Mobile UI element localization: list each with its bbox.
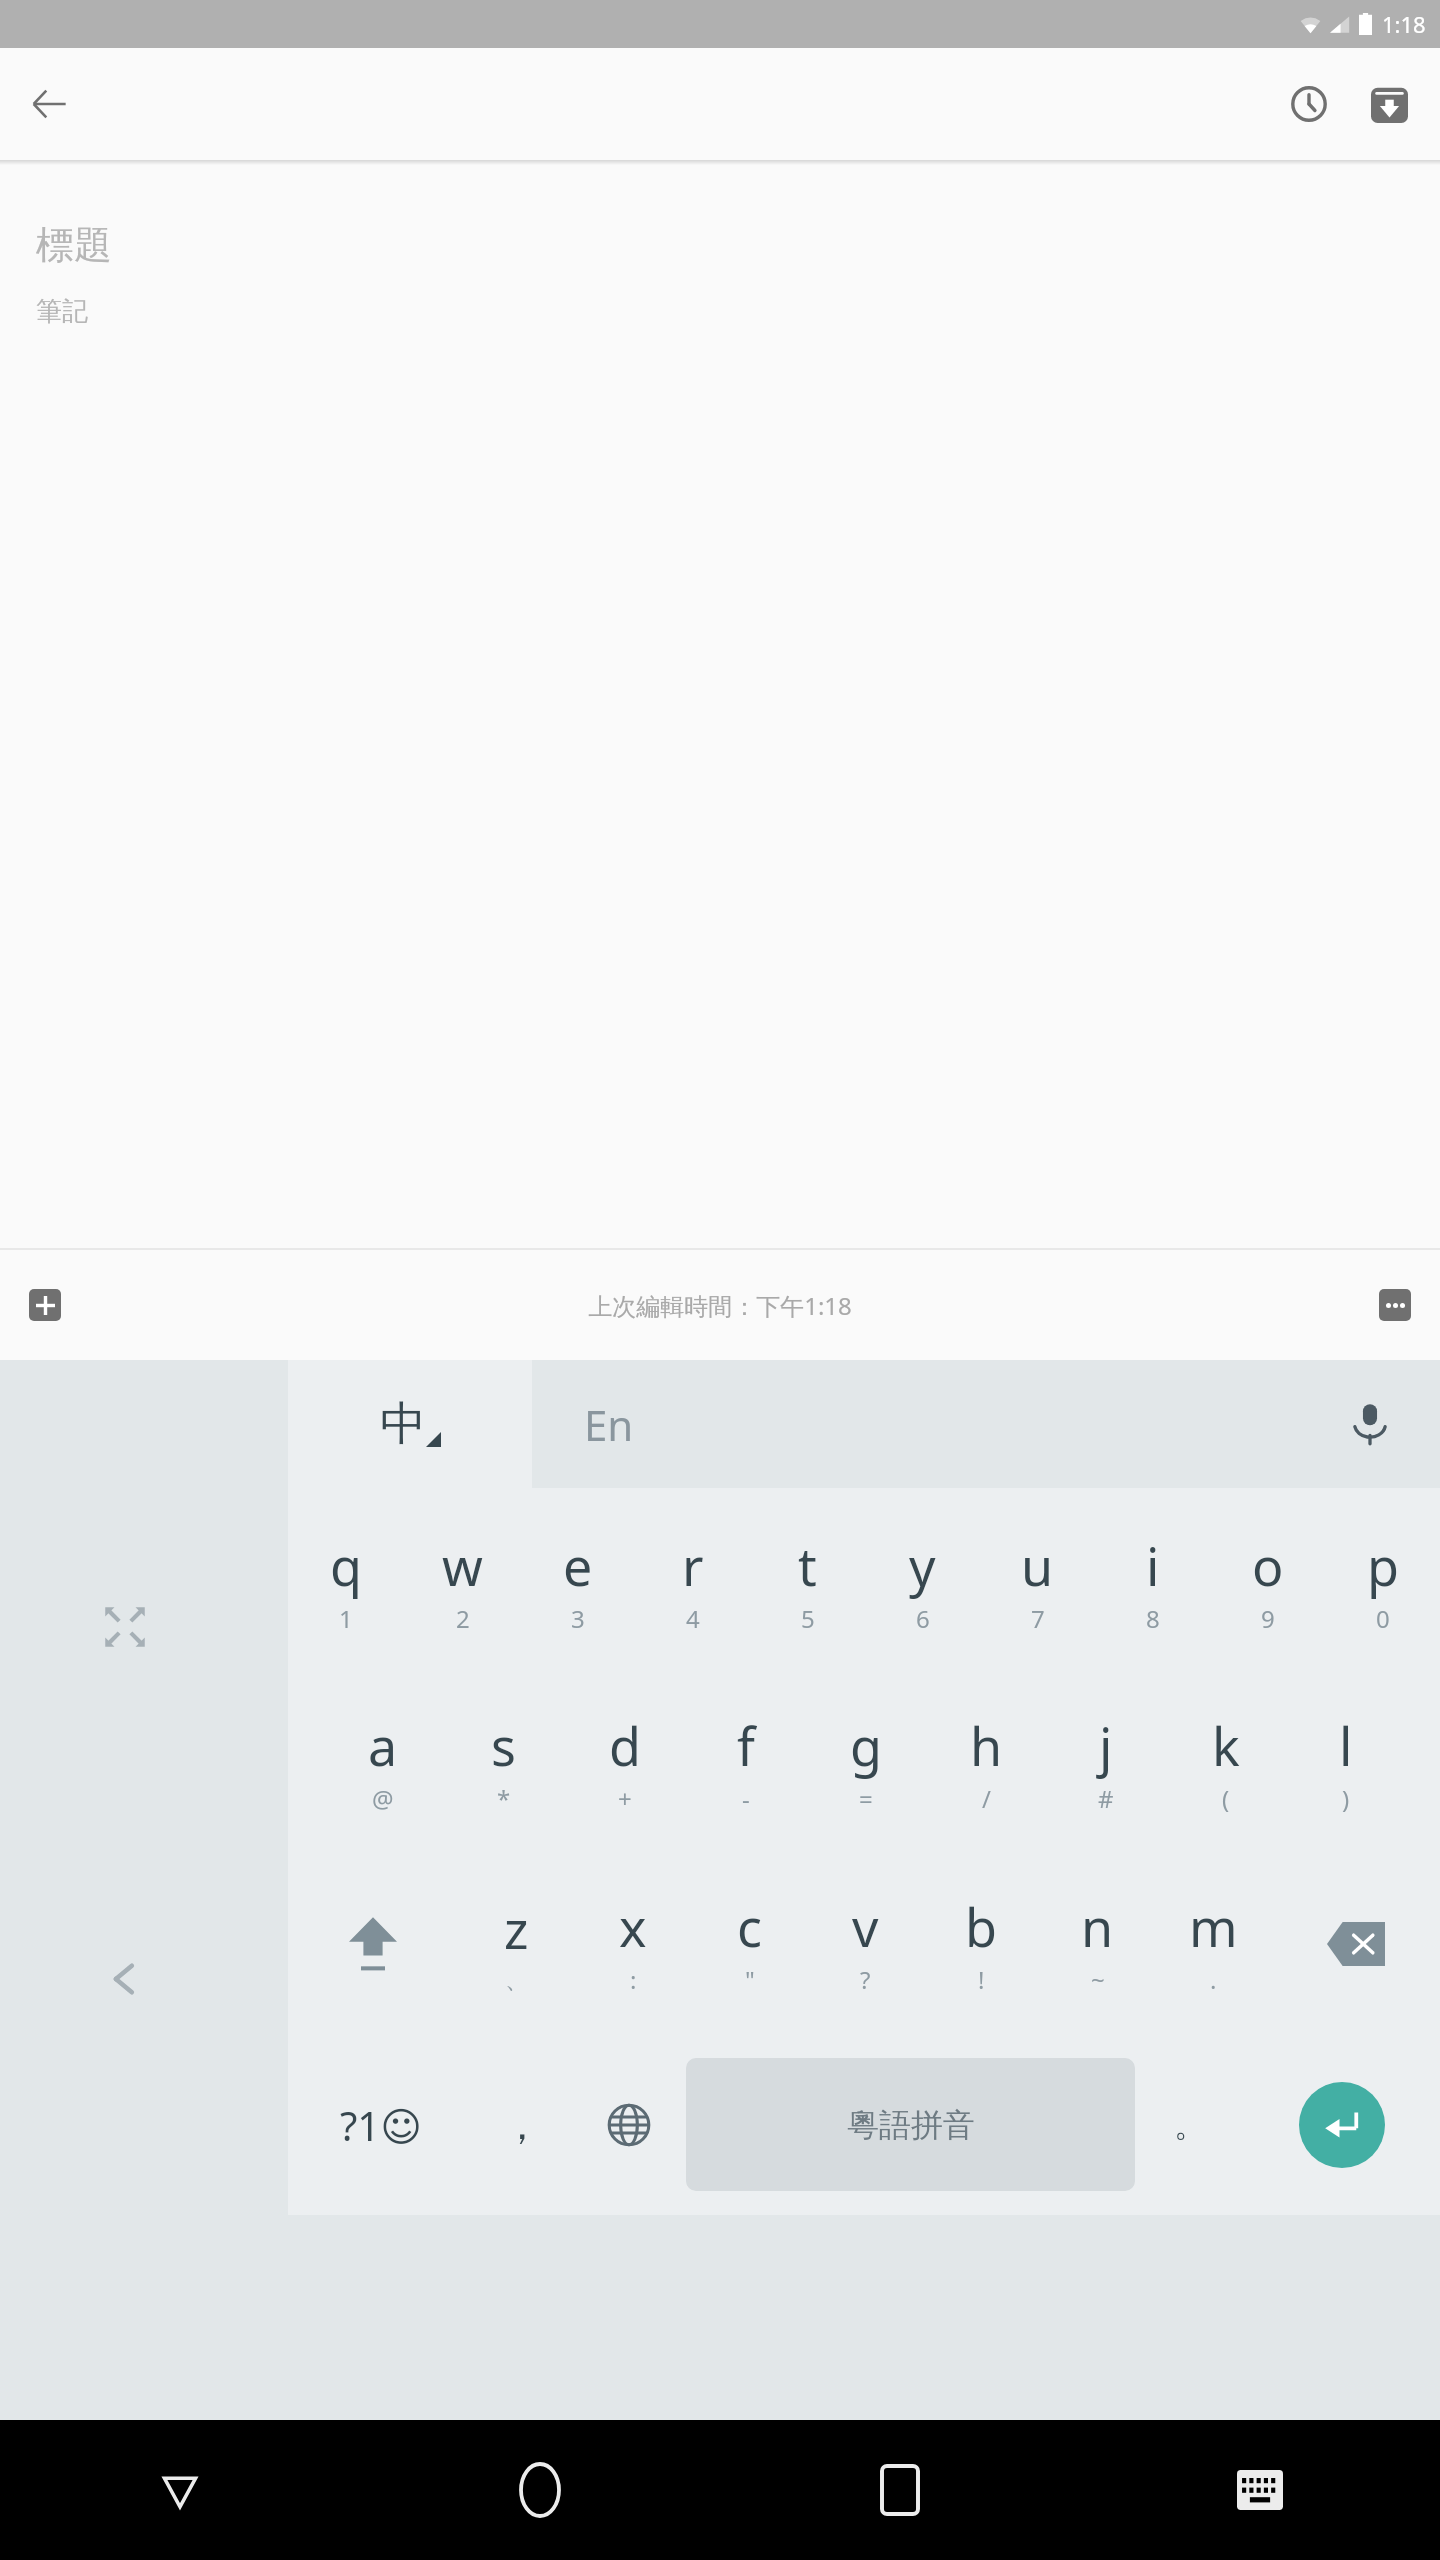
button[interactable]: Backspace bbox=[1271, 1853, 1440, 2034]
button[interactable]: 中 bbox=[288, 1360, 532, 1488]
staticText: 、 bbox=[505, 1965, 529, 1995]
staticText: 8 bbox=[1146, 1602, 1160, 1635]
staticText: h bbox=[970, 1710, 1003, 1781]
button[interactable]: Back bbox=[12, 67, 86, 141]
staticText: 標題 bbox=[36, 221, 112, 269]
staticText: " bbox=[745, 1963, 755, 1996]
button[interactable]: Reminder bbox=[1272, 67, 1346, 141]
button[interactable]: i bbox=[1095, 1492, 1210, 1672]
button[interactable]: Switch keyboard bbox=[1080, 2420, 1440, 2560]
staticText: f bbox=[737, 1710, 755, 1781]
staticText: x bbox=[619, 1891, 647, 1962]
button[interactable]: n bbox=[1039, 1853, 1155, 2034]
button[interactable]: a bbox=[322, 1672, 443, 1853]
staticText: y bbox=[909, 1530, 936, 1601]
button[interactable]: Voice input bbox=[1330, 1384, 1410, 1464]
staticText: 上次編輯時間：下午1:18 bbox=[588, 1289, 852, 1322]
button[interactable]: Add bbox=[16, 1276, 74, 1334]
staticText: = bbox=[859, 1782, 873, 1815]
staticText: 中 bbox=[380, 1395, 426, 1453]
button[interactable]: f bbox=[685, 1672, 806, 1853]
button[interactable]: ， bbox=[473, 2034, 571, 2215]
button[interactable]: o bbox=[1210, 1492, 1325, 1672]
staticText: w bbox=[442, 1530, 483, 1601]
staticText: 1 bbox=[339, 1602, 353, 1635]
staticText: v bbox=[852, 1891, 879, 1962]
button[interactable]: r bbox=[635, 1492, 750, 1672]
staticText: d bbox=[609, 1710, 641, 1781]
button[interactable]: Enter bbox=[1299, 2082, 1385, 2168]
button[interactable]: e bbox=[520, 1492, 635, 1672]
staticText: b bbox=[965, 1891, 997, 1962]
button[interactable]: v bbox=[807, 1853, 923, 2034]
button[interactable]: En bbox=[532, 1360, 1440, 1488]
staticText: - bbox=[742, 1782, 750, 1815]
button[interactable]: Archive bbox=[1352, 67, 1426, 141]
button[interactable]: y bbox=[865, 1492, 980, 1672]
button[interactable]: Collapse keyboard bbox=[90, 1944, 160, 2014]
button[interactable]: p bbox=[1325, 1492, 1440, 1672]
staticText: 2 bbox=[456, 1602, 470, 1635]
staticText: + bbox=[618, 1782, 632, 1815]
button[interactable]: 。 bbox=[1135, 2034, 1244, 2215]
staticText: ， bbox=[502, 2100, 542, 2150]
staticText: 1:18 bbox=[1382, 9, 1426, 39]
button[interactable]: c bbox=[691, 1853, 807, 2034]
staticText: q bbox=[330, 1530, 362, 1601]
staticText: ?1☺ bbox=[340, 2098, 422, 2152]
staticText: / bbox=[982, 1782, 991, 1815]
button[interactable]: 粵語拼音 bbox=[686, 2058, 1135, 2191]
button[interactable]: j bbox=[1046, 1672, 1166, 1853]
staticText: n bbox=[1081, 1891, 1114, 1962]
staticText: 3 bbox=[571, 1602, 585, 1635]
staticText: : bbox=[630, 1963, 637, 1996]
staticText: l bbox=[1339, 1710, 1353, 1781]
staticText: ? bbox=[860, 1963, 871, 1996]
staticText: 0 bbox=[1376, 1602, 1390, 1635]
button[interactable]: d bbox=[564, 1672, 685, 1853]
button[interactable]: b bbox=[923, 1853, 1039, 2034]
button[interactable]: Shift bbox=[288, 1853, 458, 2034]
button[interactable]: g bbox=[806, 1672, 926, 1853]
staticText: 粵語拼音 bbox=[847, 2105, 975, 2145]
button[interactable]: m bbox=[1155, 1853, 1271, 2034]
staticText: t bbox=[798, 1530, 817, 1601]
staticText: 筆記 bbox=[36, 295, 88, 328]
button[interactable]: z bbox=[458, 1853, 575, 2034]
button[interactable]: Home bbox=[360, 2420, 720, 2560]
staticText: a bbox=[368, 1710, 398, 1781]
staticText: 7 bbox=[1031, 1602, 1045, 1635]
staticText: ) bbox=[1342, 1782, 1350, 1815]
button[interactable]: Resize keyboard bbox=[90, 1592, 160, 1662]
button[interactable]: u bbox=[980, 1492, 1095, 1672]
staticText: r bbox=[682, 1530, 704, 1601]
staticText: ( bbox=[1222, 1782, 1230, 1815]
staticText: En bbox=[584, 1396, 634, 1453]
button[interactable]: t bbox=[750, 1492, 865, 1672]
button[interactable]: w bbox=[404, 1492, 520, 1672]
button[interactable]: ?1☺ bbox=[288, 2034, 473, 2215]
button[interactable]: q bbox=[288, 1492, 404, 1672]
button[interactable]: More options bbox=[1366, 1276, 1424, 1334]
staticText: * bbox=[497, 1782, 511, 1815]
button[interactable]: Hide keyboard bbox=[0, 2420, 360, 2560]
button[interactable]: Recents bbox=[720, 2420, 1080, 2560]
button[interactable]: x bbox=[575, 1853, 691, 2034]
staticText: . bbox=[1210, 1963, 1217, 1996]
staticText: 9 bbox=[1261, 1602, 1275, 1635]
staticText: # bbox=[1098, 1782, 1114, 1815]
button[interactable]: s bbox=[443, 1672, 564, 1853]
staticText: @ bbox=[372, 1782, 394, 1815]
staticText: 5 bbox=[801, 1602, 815, 1635]
staticText: ~ bbox=[1091, 1963, 1105, 1996]
staticText: 6 bbox=[916, 1602, 930, 1635]
button[interactable]: Change language bbox=[571, 2034, 686, 2215]
button[interactable]: l bbox=[1286, 1672, 1406, 1853]
staticText: c bbox=[737, 1891, 762, 1962]
button[interactable]: h bbox=[926, 1672, 1046, 1853]
button[interactable]: k bbox=[1166, 1672, 1286, 1853]
staticText: e bbox=[563, 1530, 593, 1601]
staticText: m bbox=[1189, 1891, 1238, 1962]
staticText: k bbox=[1212, 1710, 1240, 1781]
